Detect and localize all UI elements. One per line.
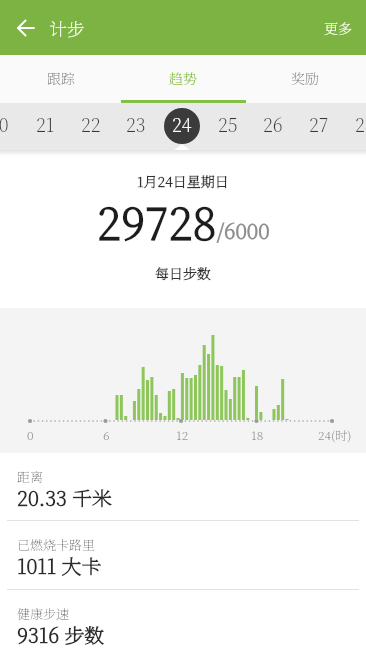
button[interactable]: 25 bbox=[205, 100, 251, 147]
button[interactable]: 21 bbox=[22, 100, 68, 147]
staticText: 12 bbox=[176, 426, 189, 443]
staticText: 28 bbox=[355, 111, 366, 137]
staticText: 25 bbox=[218, 111, 238, 137]
staticText: 健康步速 bbox=[17, 604, 70, 623]
staticText: 计步 bbox=[49, 15, 85, 41]
staticText: 跟踪 bbox=[47, 68, 75, 88]
staticText: 20 bbox=[0, 111, 9, 137]
staticText: 20.33 千米 bbox=[17, 483, 113, 512]
staticText: 已燃烧卡路里 bbox=[17, 535, 96, 554]
button[interactable]: 22 bbox=[68, 100, 114, 147]
staticText: 奖励 bbox=[291, 68, 319, 88]
staticText: 18 bbox=[251, 426, 264, 443]
staticText: 29728 bbox=[97, 189, 217, 252]
button[interactable]: 28 bbox=[342, 100, 366, 147]
staticText: 21 bbox=[36, 111, 55, 137]
button[interactable]: 20 bbox=[0, 100, 22, 147]
staticText: 24(时) bbox=[318, 426, 352, 443]
staticText: 22 bbox=[81, 111, 101, 137]
staticText: 1月24日星期日 bbox=[137, 171, 229, 191]
staticText: /6000 bbox=[217, 215, 270, 245]
staticText: 9316 步数 bbox=[17, 620, 105, 647]
staticText: 1011 大卡 bbox=[17, 551, 102, 580]
staticText: 24 bbox=[172, 111, 192, 137]
staticText: 0 bbox=[27, 426, 34, 443]
button[interactable]: 奖励 bbox=[244, 55, 366, 103]
button[interactable]: 已燃烧卡路里 bbox=[0, 521, 366, 589]
button[interactable]: 27 bbox=[296, 100, 342, 147]
button[interactable]: 距离 bbox=[0, 453, 366, 520]
staticText: 23 bbox=[126, 111, 146, 137]
button[interactable]: 26 bbox=[250, 100, 296, 147]
button[interactable] bbox=[8, 10, 44, 46]
staticText: 距离 bbox=[17, 467, 44, 486]
staticText: 6 bbox=[103, 426, 110, 443]
button[interactable]: 趋势 bbox=[122, 55, 244, 103]
staticText: 每日步数 bbox=[155, 263, 211, 283]
staticText: 趋势 bbox=[169, 68, 197, 88]
button[interactable]: 更多 bbox=[318, 12, 358, 44]
staticText: 26 bbox=[263, 111, 283, 137]
button[interactable]: 跟踪 bbox=[0, 55, 122, 103]
button[interactable]: 24 bbox=[159, 100, 205, 147]
staticText: 更多 bbox=[324, 18, 352, 38]
button[interactable]: 健康步速 bbox=[0, 590, 366, 650]
button[interactable]: 23 bbox=[113, 100, 159, 147]
staticText: 27 bbox=[309, 111, 329, 137]
